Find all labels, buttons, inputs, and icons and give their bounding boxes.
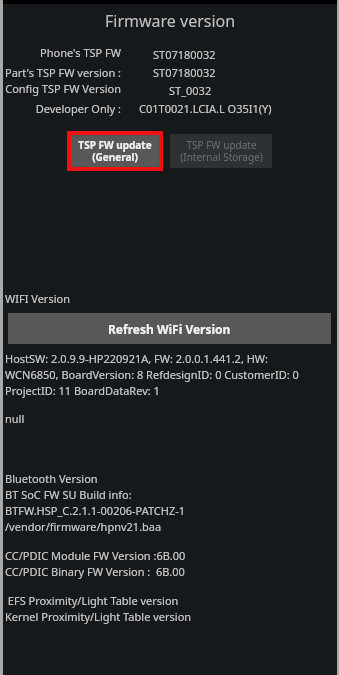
- button[interactable]: TSP FW update (General): [71, 135, 159, 167]
- staticText: ST_0032: [169, 83, 212, 98]
- staticText: TSP FW update (General): [78, 138, 152, 164]
- staticText: Refresh WiFi Version: [108, 321, 231, 337]
- staticText: C01T0021.LCIA.L O35I1(Y): [139, 101, 272, 116]
- staticText: TSP FW update (Internal Storage): [180, 138, 263, 164]
- staticText: Part's TSP FW version :: [3, 65, 121, 80]
- staticText: ST07180032: [153, 47, 216, 62]
- staticText: Bluetooth Version BT SoC FW SU Build inf…: [5, 471, 186, 534]
- staticText: EFS Proximity/Light Table version Kernel…: [5, 593, 192, 624]
- staticText: Firmware version: [105, 10, 236, 32]
- staticText: Phone's TSP FW version :: [3, 45, 121, 63]
- staticText: CC/PDIC Module FW Version :6B.00 CC/PDIC…: [5, 548, 186, 579]
- staticText: WIFI Version: [5, 291, 70, 306]
- staticText: ST07180032: [153, 65, 216, 80]
- staticText: Developer Only :: [3, 101, 121, 116]
- button[interactable]: TSP FW update (Internal Storage): [170, 134, 272, 168]
- staticText: HostSW: 2.0.9.9-HP220921A, FW: 2.0.0.1.4…: [5, 351, 299, 398]
- staticText: Config TSP FW Version :: [3, 81, 121, 99]
- staticText: null: [5, 411, 25, 426]
- button[interactable]: Refresh WiFi Version: [8, 313, 331, 344]
